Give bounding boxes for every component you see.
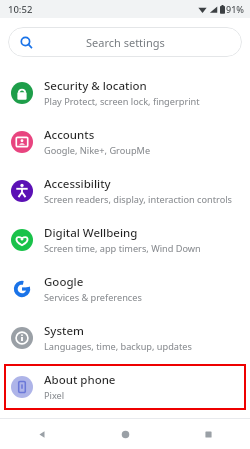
- staticText: About phone: [44, 372, 116, 388]
- other: Search: [20, 36, 33, 49]
- staticText: Play Protect, screen lock, fingerprint: [44, 95, 200, 108]
- staticText: Google: [44, 274, 84, 290]
- button[interactable]: System: [0, 315, 250, 361]
- staticText: System: [44, 323, 84, 339]
- staticText: Accessibility: [44, 176, 111, 192]
- staticText: Screen time, app timers, Wind Down: [44, 242, 201, 255]
- staticText: Search settings: [86, 35, 165, 50]
- staticText: Services & preferences: [44, 291, 142, 304]
- staticText: Security & location: [44, 78, 147, 94]
- button[interactable]: Recent apps: [167, 419, 250, 449]
- staticText: Screen readers, display, interaction con…: [44, 193, 233, 206]
- staticText: Google, Nike+, GroupMe: [44, 144, 151, 157]
- staticText: 10:52: [8, 3, 33, 16]
- button[interactable]: Search: [8, 27, 242, 57]
- button[interactable]: Security & location: [0, 70, 250, 116]
- staticText: Accounts: [44, 127, 95, 143]
- button[interactable]: Home: [84, 419, 167, 449]
- button[interactable]: Accessibility: [0, 168, 250, 214]
- button[interactable]: Back: [0, 419, 84, 449]
- staticText: 91%: [226, 3, 244, 15]
- button[interactable]: Digital Wellbeing: [0, 217, 250, 263]
- button[interactable]: Accounts: [0, 119, 250, 165]
- staticText: Pixel: [44, 389, 65, 402]
- button[interactable]: Google: [0, 266, 250, 312]
- staticText: Languages, time, backup, updates: [44, 340, 192, 353]
- staticText: Digital Wellbeing: [44, 225, 138, 241]
- button[interactable]: About phone: [4, 364, 246, 410]
